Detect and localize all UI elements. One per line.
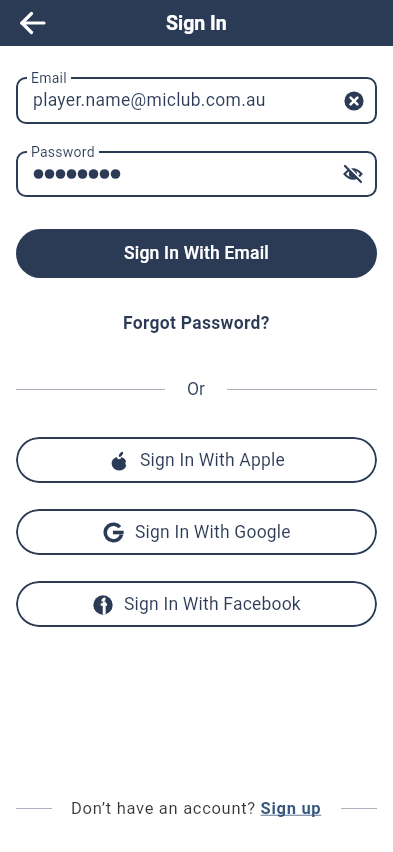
staticText: Password bbox=[31, 144, 95, 160]
staticText: Forgot Password? bbox=[123, 313, 270, 334]
button[interactable] bbox=[20, 10, 46, 36]
button[interactable]: Sign In With Email bbox=[16, 229, 377, 278]
staticText: Sign In With Facebook bbox=[124, 594, 301, 615]
button[interactable] bbox=[341, 162, 365, 186]
staticText: Sign In With Apple bbox=[140, 450, 285, 471]
staticText: Sign In With Email bbox=[124, 243, 270, 264]
button[interactable]: Sign In With Google bbox=[16, 509, 377, 555]
button[interactable]: Forgot Password? bbox=[115, 305, 278, 342]
staticText: Or bbox=[187, 379, 205, 400]
button[interactable]: Sign In With Facebook bbox=[16, 581, 377, 627]
button[interactable] bbox=[343, 90, 365, 112]
staticText: Sign In With Google bbox=[135, 522, 291, 543]
staticText: player.name@miclub.com.au bbox=[33, 90, 266, 111]
button[interactable]: Sign In With Apple bbox=[16, 437, 377, 483]
staticText: Sign In bbox=[166, 12, 227, 35]
staticText: Email bbox=[31, 70, 67, 86]
button[interactable]: Don’t have an account? Sign up bbox=[71, 799, 322, 818]
